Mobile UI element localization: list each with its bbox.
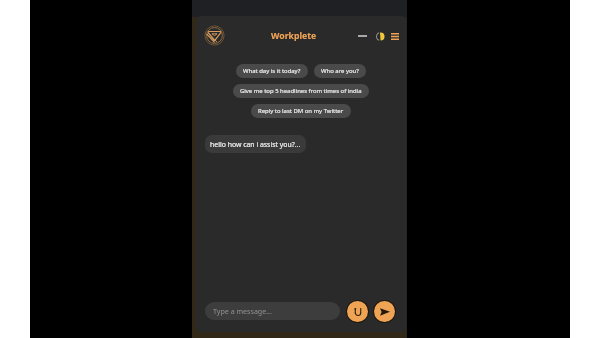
staticText: Give me top 5 headlines from times of in…	[240, 87, 362, 95]
button[interactable]: Send	[373, 300, 396, 323]
button[interactable]: Workplete logo	[204, 25, 225, 46]
button[interactable]: What day is it today?	[236, 64, 308, 78]
button[interactable]: Minimize	[355, 29, 369, 43]
staticText: Reply to last DM on my Twitter	[258, 107, 344, 115]
staticText: Who are you?	[321, 67, 359, 75]
staticText: What day is it today?	[243, 67, 301, 75]
button[interactable]: Who are you?	[314, 64, 366, 78]
staticText: Workplete	[271, 30, 317, 42]
button[interactable]: hello how can i assist you?...	[205, 135, 306, 153]
button[interactable]: Reply to last DM on my Twitter	[251, 104, 351, 118]
button[interactable]: Toggle dark mode	[373, 29, 387, 43]
button[interactable]: Give me top 5 headlines from times of in…	[233, 84, 369, 98]
button[interactable]: Type a message...	[205, 302, 340, 320]
button[interactable]: Refresh	[346, 300, 369, 323]
staticText: hello how can i assist you?...	[210, 140, 301, 149]
staticText: Type a message...	[213, 306, 272, 316]
button[interactable]: Menu	[388, 29, 402, 43]
